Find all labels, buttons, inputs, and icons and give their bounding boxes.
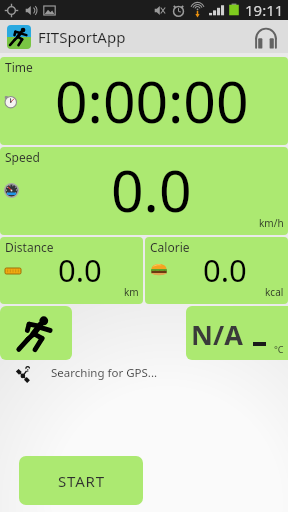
staticText: Calorie xyxy=(150,239,190,255)
staticText: 19:11 xyxy=(245,0,284,20)
staticText: Distance xyxy=(5,239,54,255)
staticText: km xyxy=(124,285,139,299)
button[interactable]: Calorie xyxy=(145,237,288,304)
staticText: 0.0 xyxy=(58,249,102,291)
staticText: Time xyxy=(5,59,33,75)
staticText: FITSportApp xyxy=(38,27,126,47)
staticText: 0:00:00 xyxy=(55,62,249,140)
staticText: kcal xyxy=(265,285,284,299)
button[interactable]: Choose sport mode xyxy=(0,306,72,360)
staticText: °C xyxy=(274,343,284,355)
staticText: Searching for GPS... xyxy=(51,365,158,381)
staticText: Speed xyxy=(5,149,40,165)
button[interactable]: START xyxy=(19,456,143,505)
staticText: N/A xyxy=(191,316,243,353)
button[interactable]: Speed xyxy=(0,147,288,235)
button[interactable]: Time xyxy=(0,57,288,145)
staticText: km/h xyxy=(259,216,284,230)
button[interactable]: Distance xyxy=(0,237,143,304)
staticText: START xyxy=(58,471,105,491)
button[interactable]: Audio player xyxy=(252,22,282,52)
staticText: 0.0 xyxy=(111,151,192,229)
button[interactable]: N/A xyxy=(186,306,288,360)
staticText: 0.0 xyxy=(203,249,247,291)
